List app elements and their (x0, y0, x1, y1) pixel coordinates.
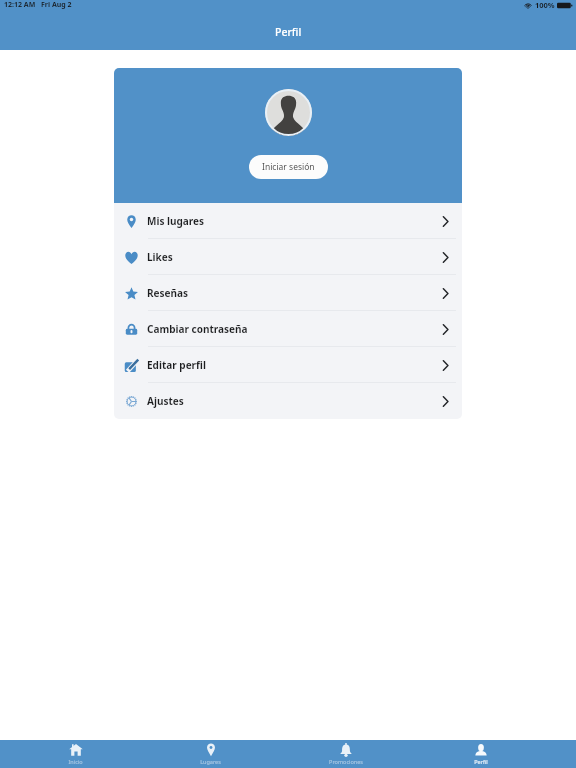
staticText: Perfil (474, 758, 488, 765)
button[interactable]: Editar perfil (114, 347, 462, 383)
staticText: Likes (147, 250, 173, 264)
staticText: Ajustes (147, 394, 184, 408)
button[interactable]: Mis lugares (114, 203, 462, 239)
staticText: Iniciar sesión (262, 161, 315, 173)
button[interactable]: Cambiar contraseña (114, 311, 462, 347)
staticText: Editar perfil (147, 358, 206, 372)
staticText: Reseñas (147, 286, 189, 300)
button[interactable]: Reseñas (114, 275, 462, 311)
staticText: Lugares (200, 758, 221, 765)
staticText: Cambiar contraseña (147, 322, 248, 336)
staticText: Inicio (68, 758, 83, 765)
button[interactable]: Ajustes (114, 383, 462, 419)
staticText: Fri Aug 2 (41, 0, 72, 10)
staticText: Perfil (275, 25, 302, 39)
button[interactable]: Promociones (278, 740, 413, 768)
button[interactable]: Inicio (8, 740, 143, 768)
button[interactable]: Likes (114, 239, 462, 275)
staticText: Promociones (329, 758, 363, 765)
staticText: 100% (535, 0, 555, 10)
button[interactable]: Iniciar sesión (249, 155, 328, 179)
button[interactable]: Perfil (413, 740, 548, 768)
button[interactable]: Lugares (143, 740, 278, 768)
staticText: Mis lugares (147, 214, 205, 228)
staticText: 12:12 AM (4, 0, 36, 10)
